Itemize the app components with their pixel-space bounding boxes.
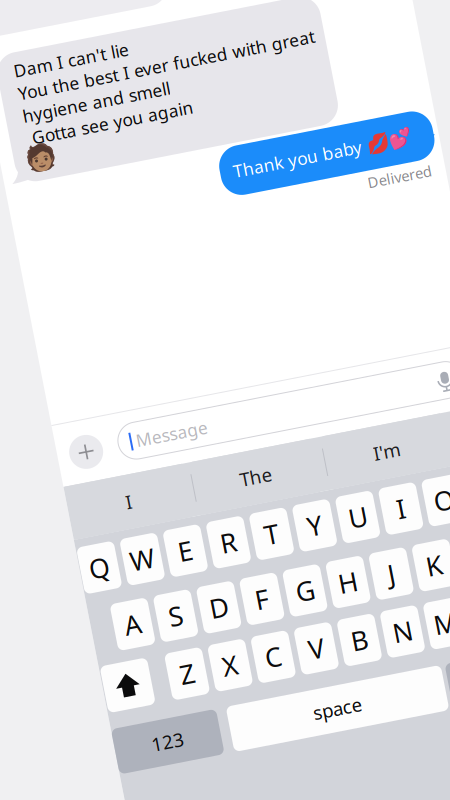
button[interactable]: O — [249, 373, 287, 421]
button[interactable]: X — [249, 373, 287, 421]
staticText: W — [101, 514, 126, 550]
button[interactable]: R — [249, 373, 287, 421]
button[interactable]: Delete — [244, 373, 292, 421]
button[interactable]: A — [249, 373, 287, 421]
button[interactable]: G — [249, 373, 287, 421]
staticText: I — [108, 461, 114, 485]
staticText: I — [372, 514, 381, 550]
staticText: V — [259, 635, 275, 671]
button[interactable]: B — [249, 373, 287, 421]
staticText: 🧑🏽 — [75, 103, 107, 132]
staticText: C — [215, 635, 232, 671]
button[interactable]: U — [249, 373, 287, 421]
staticText: Q — [59, 514, 80, 550]
button[interactable]: Return — [220, 374, 316, 420]
button[interactable]: W — [249, 373, 287, 421]
staticText: B — [303, 635, 320, 671]
staticText: 123 — [87, 704, 120, 728]
staticText: Z — [128, 635, 143, 671]
staticText: Y — [282, 514, 297, 550]
button[interactable]: space — [158, 374, 377, 420]
staticText: The — [224, 461, 257, 485]
button[interactable]: V — [249, 373, 287, 421]
button[interactable]: M — [249, 373, 287, 421]
staticText: D — [170, 576, 189, 612]
staticText: E — [150, 514, 165, 550]
staticText: H — [301, 576, 321, 612]
button[interactable]: P — [249, 373, 287, 421]
button[interactable]: Message — [92, 378, 444, 415]
button[interactable]: The — [208, 370, 328, 424]
staticText: U — [324, 514, 343, 550]
button[interactable]: F — [249, 373, 287, 421]
button[interactable]: I — [249, 373, 287, 421]
button[interactable]: E — [249, 373, 287, 421]
button[interactable]: I — [208, 370, 328, 424]
button[interactable]: D — [249, 373, 287, 421]
button[interactable]: K — [249, 373, 287, 421]
staticText: Gotta see you again — [81, 86, 250, 109]
button[interactable]: H — [249, 373, 287, 421]
staticText: S — [128, 576, 143, 612]
staticText: M — [387, 635, 411, 671]
staticText: You the best I ever fucked with great — [81, 40, 383, 63]
button[interactable]: S — [249, 373, 287, 421]
staticText: L — [436, 576, 450, 612]
staticText: A — [83, 576, 100, 612]
button[interactable]: Q — [249, 373, 287, 421]
staticText: T — [238, 514, 253, 550]
button[interactable]: C — [249, 373, 287, 421]
button[interactable]: Z — [249, 373, 287, 421]
button[interactable]: L — [249, 373, 287, 421]
button[interactable]: J — [249, 373, 287, 421]
button[interactable]: Y — [249, 373, 287, 421]
staticText: N — [345, 635, 365, 671]
staticText: J — [351, 576, 358, 612]
button[interactable]: N — [249, 373, 287, 421]
staticText: O — [410, 514, 431, 550]
button[interactable]: Shift — [244, 373, 292, 421]
button[interactable]: I'm — [208, 370, 328, 424]
staticText: 💋💕 — [413, 158, 450, 180]
staticText: F — [216, 576, 230, 612]
button[interactable]: T — [249, 373, 287, 421]
staticText: K — [390, 576, 407, 612]
staticText: G — [258, 576, 277, 612]
button[interactable]: More options — [251, 380, 285, 414]
staticText: hygiene and smell — [81, 63, 231, 86]
button[interactable]: 123 — [214, 374, 321, 420]
staticText: Thank you baby — [277, 157, 408, 180]
staticText: X — [171, 635, 187, 671]
staticText: R — [193, 514, 210, 550]
staticText: Message — [130, 403, 203, 426]
staticText: Dam I can't lie — [81, 17, 198, 40]
